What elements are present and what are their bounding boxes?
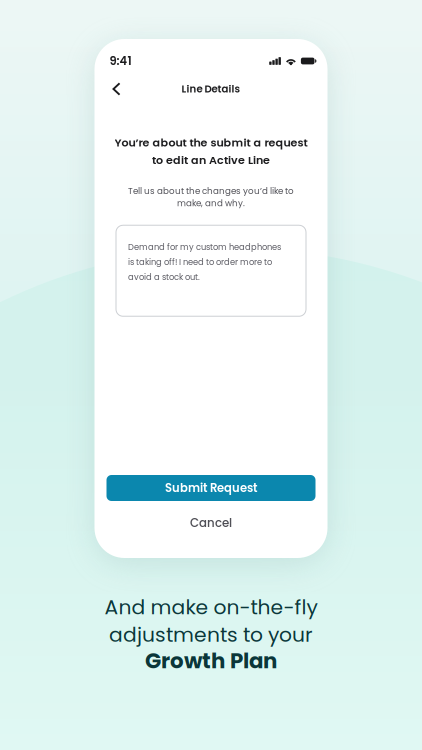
- staticText: You’re about the submit a request: [114, 135, 307, 150]
- button[interactable]: Back: [105, 78, 127, 100]
- staticText: 9:41: [109, 53, 131, 69]
- staticText: Growth Plan: [145, 646, 277, 676]
- button[interactable]: Submit Request: [106, 475, 315, 501]
- staticText: adjustments to your: [109, 620, 313, 649]
- staticText: Submit Request: [165, 480, 257, 496]
- staticText: Demand for my custom headphones: [128, 241, 281, 253]
- button[interactable]: Cancel: [106, 514, 315, 532]
- staticText: Tell us about the changes you’d like to: [128, 185, 294, 197]
- staticText: avoid a stock out.: [128, 271, 200, 283]
- staticText: make, and why.: [177, 197, 245, 209]
- staticText: to edit an Active Line: [152, 152, 270, 168]
- staticText: And make on-the-fly: [104, 593, 317, 621]
- staticText: Line Details: [181, 82, 240, 96]
- staticText: Cancel: [190, 515, 232, 531]
- staticText: is taking off! I need to order more to: [128, 256, 272, 268]
